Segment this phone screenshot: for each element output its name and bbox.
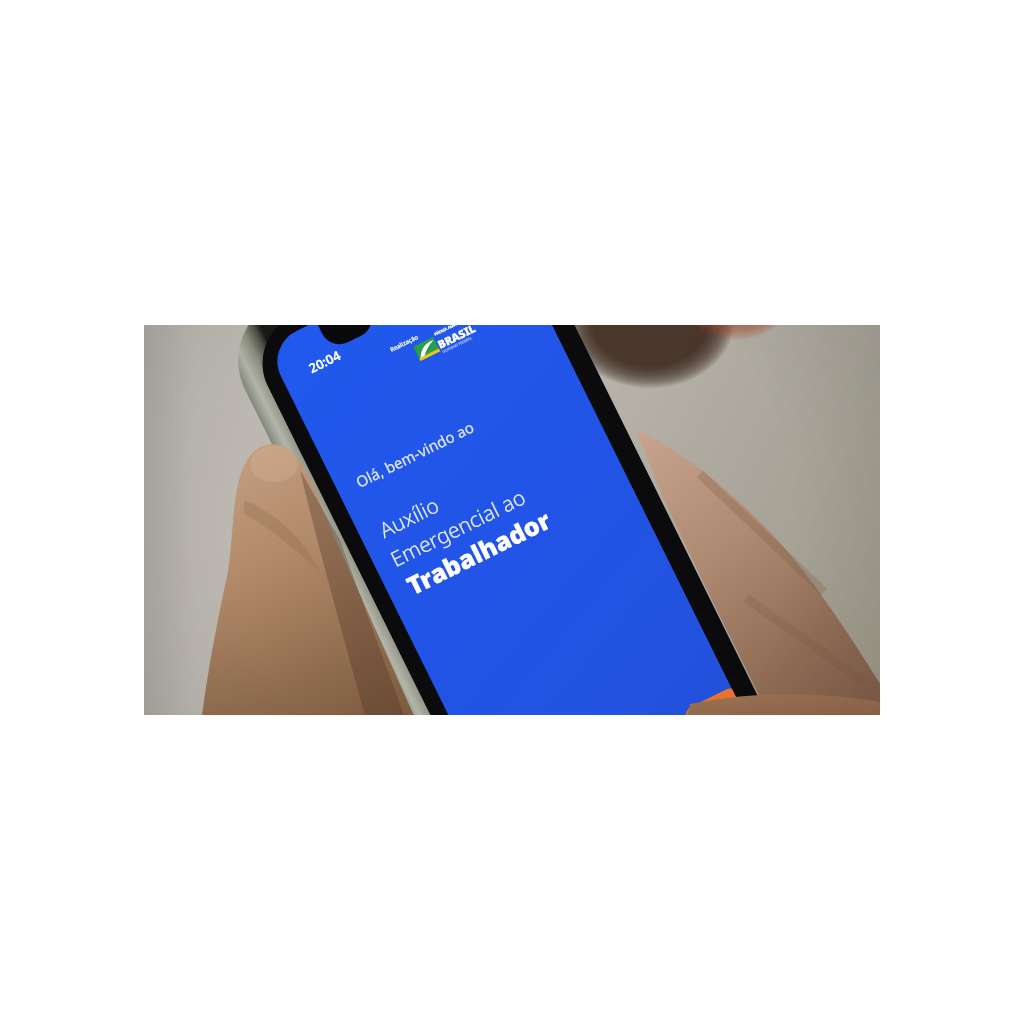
button[interactable]: Foto: mão segurando celular com o app Au… xyxy=(0,0,1024,1024)
